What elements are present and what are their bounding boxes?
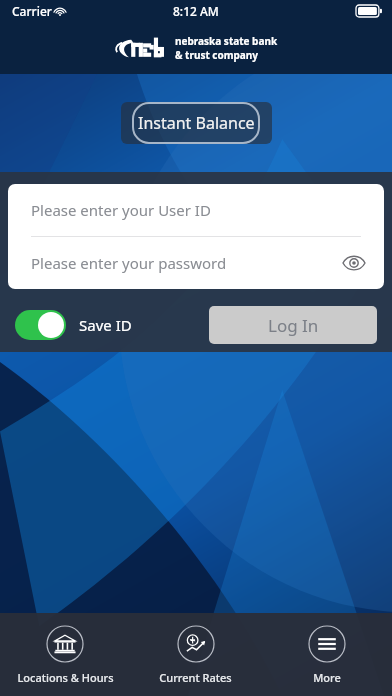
staticText: nebraska state bank <box>175 34 278 48</box>
staticText: Instant Balance <box>138 112 255 134</box>
staticText: Carrier <box>12 3 52 19</box>
button[interactable]: Show password <box>339 248 369 278</box>
staticText: Locations & Hours <box>17 670 114 685</box>
staticText: More <box>313 670 341 685</box>
button[interactable]: Log In <box>209 306 377 344</box>
button[interactable]: Locations & Hours <box>0 613 130 696</box>
button[interactable]: Save ID <box>15 310 132 340</box>
button[interactable]: Please enter your User ID <box>8 184 384 236</box>
button[interactable]: Instant Balance <box>121 102 272 144</box>
staticText: 8:12 AM <box>173 3 219 19</box>
staticText: & trust company <box>175 48 259 62</box>
staticText: Log In <box>268 314 319 337</box>
staticText: Current Rates <box>159 670 232 685</box>
staticText: Save ID <box>79 315 132 335</box>
button[interactable]: More <box>261 613 392 696</box>
staticText: Please enter your User ID <box>31 200 211 220</box>
button[interactable]: Current Rates <box>130 613 261 696</box>
button[interactable]: Please enter your password <box>8 237 384 289</box>
staticText: Please enter your password <box>31 253 227 273</box>
